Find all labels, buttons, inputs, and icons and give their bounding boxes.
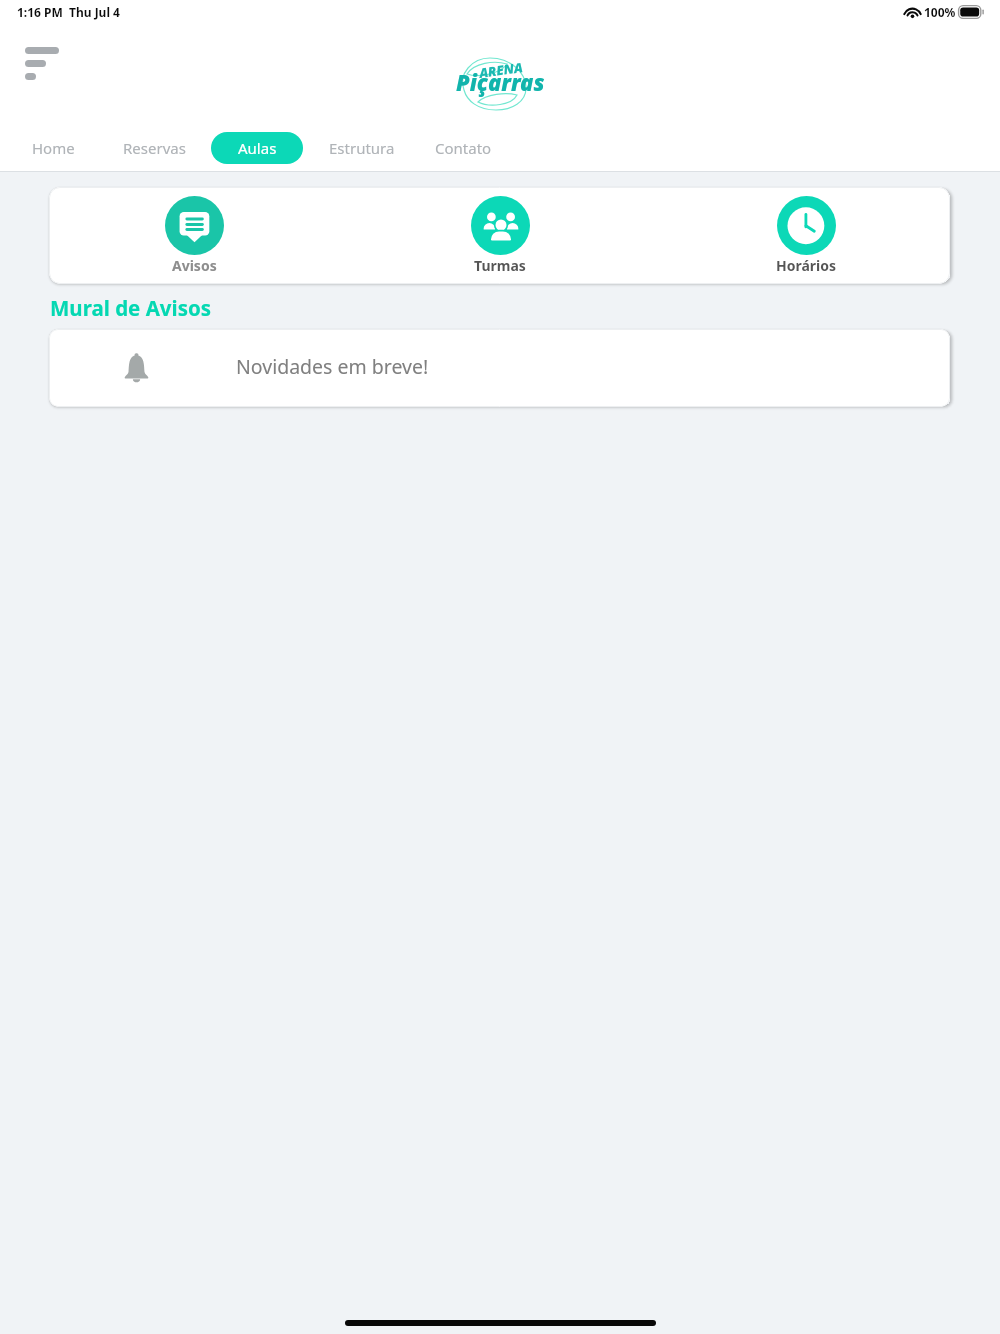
button[interactable]: Reservas [110, 132, 199, 164]
staticText: Avisos [172, 256, 217, 275]
staticText: Reservas [123, 138, 186, 158]
staticText: 1:16 PM [17, 4, 63, 20]
button[interactable]: Avisos [149, 191, 239, 280]
button[interactable]: Contato [422, 132, 505, 164]
staticText: Aulas [238, 138, 277, 158]
staticText: ARENA [478, 58, 524, 82]
staticText: Thu Jul 4 [69, 4, 120, 20]
button[interactable]: Turmas [455, 191, 545, 280]
button[interactable]: Menu [13, 37, 71, 90]
staticText: Contato [435, 138, 492, 158]
staticText: 100% [924, 4, 956, 20]
staticText: Piçarras [456, 67, 545, 97]
button[interactable]: Novidades em breve! [49, 329, 950, 407]
staticText: Turmas [474, 256, 526, 275]
staticText: Home [32, 138, 75, 158]
button[interactable]: Aulas [211, 132, 303, 164]
staticText: Novidades em breve! [236, 353, 429, 380]
button[interactable]: Home [19, 132, 88, 164]
button[interactable]: Estrutura [316, 132, 408, 164]
staticText: Horários [776, 256, 837, 275]
staticText: Estrutura [329, 138, 395, 158]
button[interactable]: Horários [761, 191, 851, 280]
staticText: Mural de Avisos [50, 294, 212, 322]
